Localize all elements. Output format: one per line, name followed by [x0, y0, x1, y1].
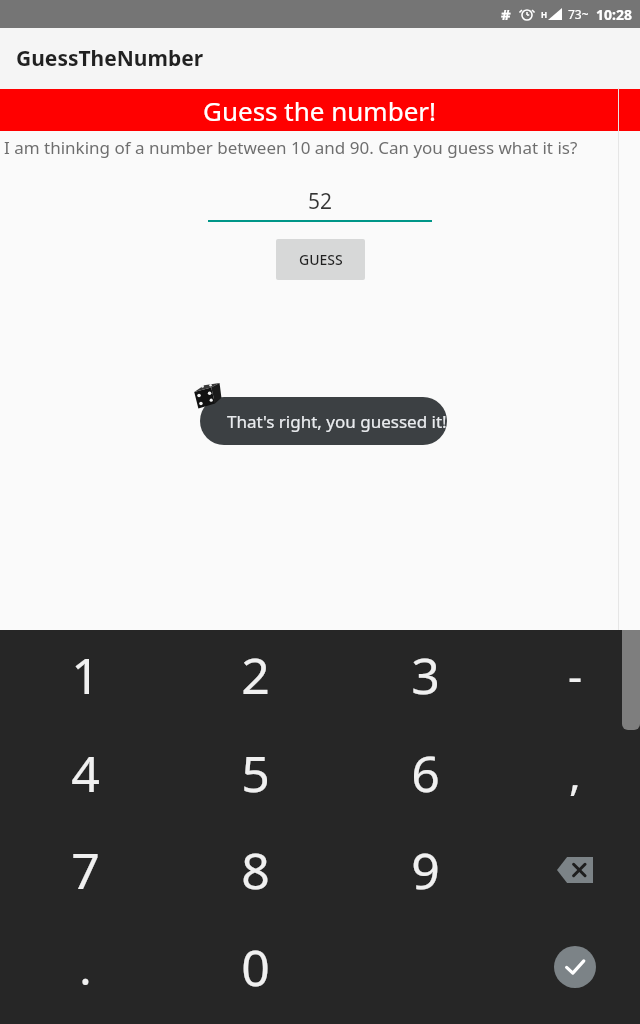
staticText: ,	[569, 743, 581, 803]
button[interactable]: 7	[25, 822, 145, 918]
staticText: .	[79, 936, 92, 999]
staticText: 9	[411, 836, 440, 904]
staticText: 8	[241, 836, 270, 904]
staticText: 3	[411, 641, 440, 709]
button[interactable]: Enter	[525, 919, 625, 1015]
button[interactable]: 6	[365, 725, 485, 821]
button[interactable]: 0	[195, 919, 315, 1015]
button[interactable]: 1	[25, 627, 145, 723]
button[interactable]: 3	[365, 627, 485, 723]
staticText: -	[568, 645, 583, 705]
button[interactable]: GUESS	[276, 239, 365, 280]
button[interactable]: 2	[195, 627, 315, 723]
staticText: 10:28	[596, 5, 632, 24]
staticText: That's right, you guessed it!	[227, 410, 447, 433]
staticText: 4	[71, 739, 100, 807]
staticText: GUESS	[299, 250, 343, 269]
button[interactable]: Backspace	[525, 822, 625, 918]
staticText: Guess the number!	[203, 93, 437, 128]
button[interactable]: 5	[195, 725, 315, 821]
staticText: 0	[241, 933, 270, 1001]
staticText: 1	[71, 641, 100, 709]
button[interactable]: 4	[25, 725, 145, 821]
staticText: H	[541, 9, 548, 20]
staticText: 5	[241, 739, 270, 807]
staticText: 73~	[568, 6, 589, 22]
button[interactable]: 9	[365, 822, 485, 918]
staticText: 52	[308, 187, 333, 216]
button[interactable]: .	[25, 919, 145, 1015]
button[interactable]: 52	[208, 187, 432, 222]
button[interactable]: 8	[195, 822, 315, 918]
staticText: 6	[411, 739, 440, 807]
staticText: 2	[241, 641, 270, 709]
staticText: I am thinking of a number between 10 and…	[4, 136, 578, 159]
button[interactable]: -	[525, 627, 625, 723]
staticText: #	[501, 4, 511, 24]
staticText: 7	[71, 836, 100, 904]
staticText: GuessTheNumber	[16, 44, 204, 73]
button[interactable]: ,	[525, 725, 625, 821]
